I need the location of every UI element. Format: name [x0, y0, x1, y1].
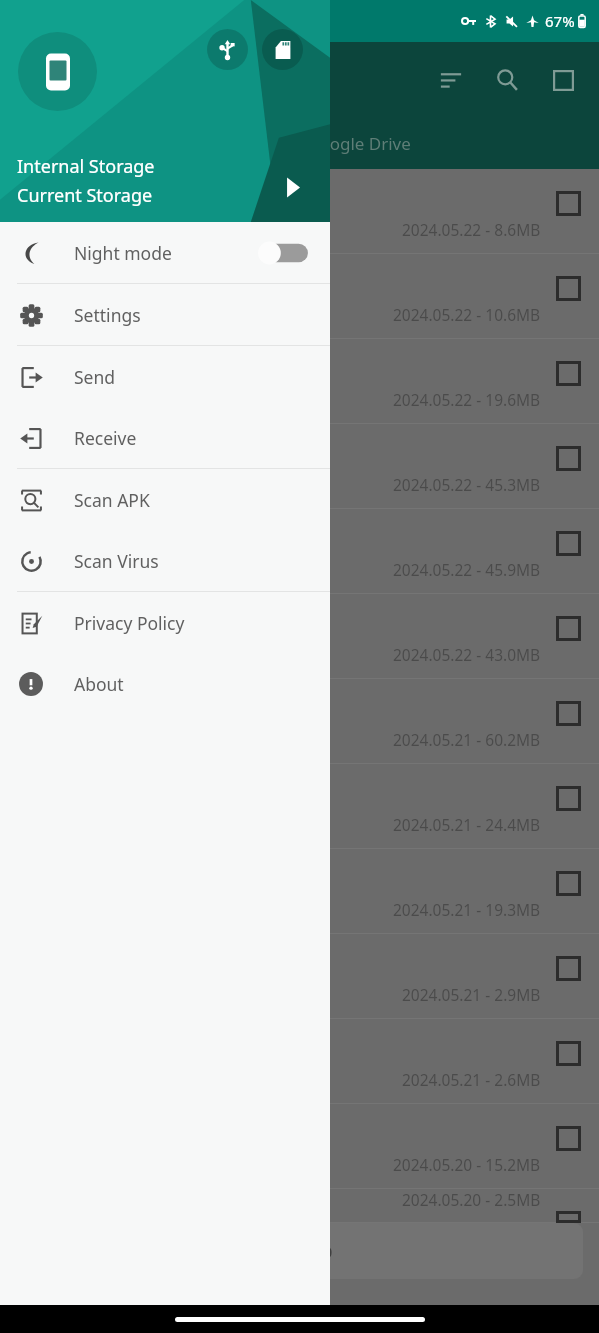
button[interactable]: USB storage	[207, 29, 248, 70]
button[interactable]: 2024.05.22 - 19.6MB	[0, 339, 599, 424]
button[interactable]: 2024.05.20 - 15.2MB	[0, 1104, 599, 1189]
staticText: Privacy Policy	[74, 611, 185, 635]
staticText: Receive	[74, 426, 137, 450]
button[interactable]: 2024.05.22 - 45.3MB	[0, 424, 599, 509]
staticText: Google Drive	[307, 132, 411, 155]
button[interactable]: Photos	[0, 117, 239, 169]
button[interactable]: Scan Virus	[0, 530, 330, 591]
staticText: Settings	[74, 303, 141, 327]
staticText: Scan Virus	[74, 549, 159, 573]
staticText: 2024.05.21 - 19.3MB	[393, 899, 541, 920]
staticText: Current Storage	[17, 183, 153, 208]
staticText: 2024.05.22 - 43.0MB	[393, 644, 541, 665]
button[interactable]: Settings	[0, 284, 330, 345]
staticText: 2024.05.21 - 2.9MB	[402, 984, 541, 1005]
button[interactable]: Sort	[423, 52, 479, 108]
button[interactable]: Google Drive	[239, 117, 479, 169]
staticText: 2024.05.20 - 2.5MB	[402, 1189, 541, 1209]
staticText: 67%	[545, 11, 575, 31]
staticText: About	[74, 672, 124, 696]
button[interactable]: 2024.05.22 - 43.0MB	[0, 594, 599, 679]
button[interactable]: Privacy Policy	[0, 592, 330, 653]
staticText: 2024.05.22 - 10.6MB	[393, 304, 541, 325]
button[interactable]: Device storage	[18, 32, 97, 111]
button[interactable]: Scan APK	[0, 469, 330, 530]
staticText: Night mode	[74, 241, 172, 265]
button[interactable]: 2024.05.22 - 10.6MB	[0, 254, 599, 339]
staticText: Scan APK	[74, 488, 150, 512]
button[interactable]: 2024.05.22 - 45.9MB	[0, 509, 599, 594]
button[interactable]: Backup	[16, 1223, 583, 1279]
staticText: 2024.05.22 - 45.3MB	[393, 474, 541, 495]
staticText: 2024.05.21 - 60.2MB	[393, 729, 541, 750]
button[interactable]: 2024.05.21 - 2.9MB	[0, 934, 599, 1019]
button[interactable]: 2024.05.21 - 19.3MB	[0, 849, 599, 934]
staticText: 2024.05.21 - 2.6MB	[402, 1069, 541, 1090]
button[interactable]: About	[0, 653, 330, 714]
button[interactable]	[258, 238, 310, 268]
button[interactable]: 2024.05.21 - 60.2MB	[0, 679, 599, 764]
staticText: 2024.05.22 - 8.6MB	[402, 219, 541, 240]
staticText: Internal Storage	[17, 154, 155, 179]
button[interactable]: Receive	[0, 407, 330, 468]
staticText: 2024.05.20 - 15.2MB	[393, 1154, 541, 1175]
staticText: Backup	[267, 1238, 333, 1264]
button[interactable]: 2024.05.20 - 2.5MB	[0, 1189, 599, 1223]
button[interactable]: 2024.05.21 - 2.6MB	[0, 1019, 599, 1104]
staticText: 2024.05.22 - 19.6MB	[393, 389, 541, 410]
staticText: 2024.05.21 - 24.4MB	[393, 814, 541, 835]
button[interactable]: Select all	[535, 52, 591, 108]
button[interactable]: 2024.05.21 - 24.4MB	[0, 764, 599, 849]
button[interactable]: Night mode	[0, 222, 330, 283]
button[interactable]: SD card	[262, 29, 303, 70]
button[interactable]: Search	[479, 52, 535, 108]
staticText: Send	[74, 365, 116, 389]
button[interactable]: Send	[0, 346, 330, 407]
staticText: 2024.05.22 - 45.9MB	[393, 559, 541, 580]
button[interactable]: 2024.05.22 - 8.6MB	[0, 169, 599, 254]
